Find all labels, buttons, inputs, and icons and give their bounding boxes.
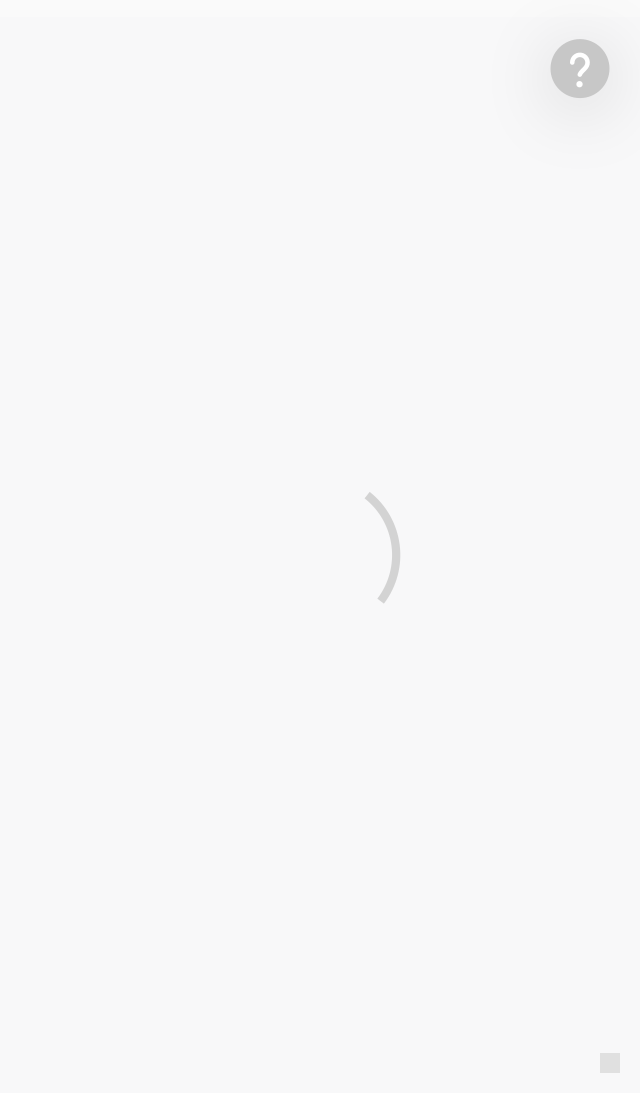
button[interactable]: Help	[550, 39, 609, 98]
